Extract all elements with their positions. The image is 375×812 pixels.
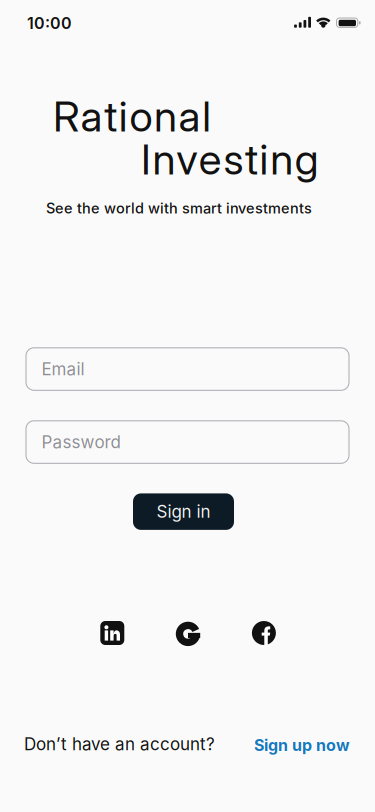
button[interactable]: Sign in with LinkedIn — [100, 621, 124, 645]
staticText: Sign up now — [254, 735, 350, 755]
button[interactable]: Sign up now — [254, 735, 350, 755]
staticText: Rational — [53, 91, 211, 142]
button[interactable]: Sign in with Facebook — [252, 621, 276, 645]
button[interactable]: Password — [25, 420, 349, 464]
button[interactable]: Sign in with Google — [175, 621, 201, 647]
staticText: Sign in — [156, 501, 210, 522]
button[interactable]: Sign in — [133, 493, 234, 530]
staticText: Password — [41, 432, 120, 452]
staticText: See the world with smart investments — [46, 199, 312, 217]
staticText: Investing — [141, 134, 319, 184]
staticText: Don’t have an account? — [24, 734, 215, 754]
button[interactable]: Email — [25, 347, 349, 391]
staticText: Email — [41, 359, 84, 379]
staticText: 10:00 — [27, 13, 72, 33]
